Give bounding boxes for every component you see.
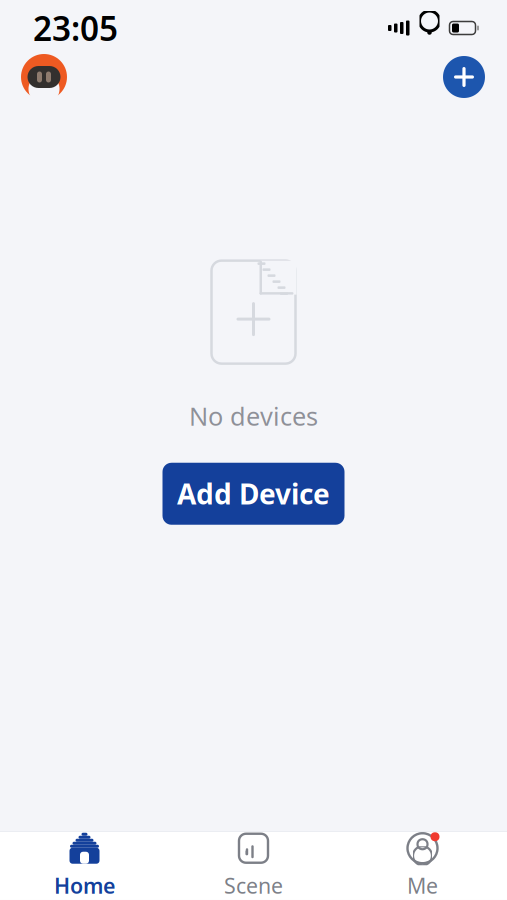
button[interactable]: Home: [0, 832, 169, 900]
staticText: Home: [54, 871, 115, 899]
button[interactable]: Add Device: [162, 463, 344, 525]
staticText: Me: [407, 871, 438, 899]
button[interactable]: Me: [338, 832, 507, 900]
staticText: 23:05: [33, 6, 118, 50]
button[interactable]: Assistant: [20, 53, 68, 101]
staticText: No devices: [189, 399, 318, 433]
button[interactable]: Scene: [169, 832, 338, 900]
staticText: Scene: [224, 871, 283, 899]
staticText: Add Device: [177, 475, 330, 512]
button[interactable]: Add: [442, 55, 486, 99]
